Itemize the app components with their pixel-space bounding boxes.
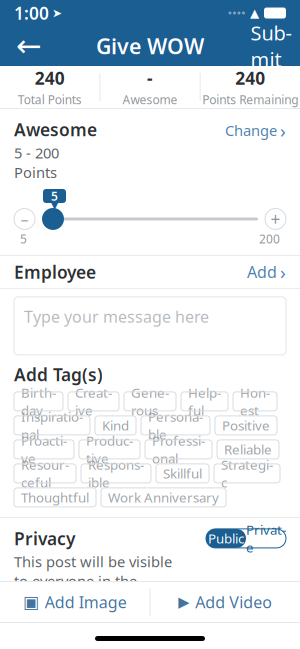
button[interactable]: Productive bbox=[79, 440, 140, 459]
staticText: – bbox=[20, 208, 28, 229]
staticText: ← bbox=[16, 29, 42, 63]
staticText: Positive bbox=[222, 417, 270, 434]
staticText: This post will be visible to everyone in… bbox=[14, 552, 172, 610]
button[interactable]: Creative bbox=[68, 392, 119, 411]
button[interactable]: Back bbox=[0, 26, 58, 66]
staticText: Work Anniversary bbox=[108, 489, 219, 506]
button[interactable]: Private bbox=[246, 529, 286, 548]
button[interactable]: Change bbox=[225, 118, 286, 143]
staticText: Honest bbox=[240, 384, 270, 419]
staticText: ▣ bbox=[23, 592, 39, 612]
staticText: › bbox=[280, 259, 286, 284]
staticText: Thoughtful bbox=[21, 489, 89, 506]
button[interactable]: ▣ bbox=[0, 582, 149, 622]
staticText: 240 bbox=[235, 66, 265, 89]
staticText: + bbox=[270, 207, 280, 230]
button[interactable]: Inspirational bbox=[14, 416, 90, 435]
staticText: 5 - 200 Points bbox=[14, 143, 59, 182]
staticText: 1:00 bbox=[14, 1, 49, 24]
staticText: Responsible bbox=[88, 456, 144, 491]
button[interactable]: Birthday bbox=[14, 392, 63, 411]
button[interactable]: Skillful bbox=[156, 464, 209, 483]
staticText: Inspirational bbox=[21, 408, 83, 443]
button[interactable]: Professional bbox=[145, 440, 212, 459]
button[interactable]: Responsible bbox=[81, 464, 151, 483]
button[interactable]: Thoughtful bbox=[14, 488, 96, 507]
staticText: Points Remaining bbox=[202, 91, 298, 107]
staticText: 5 bbox=[51, 188, 58, 204]
staticText: Professional bbox=[152, 432, 205, 467]
button[interactable]: Generous bbox=[124, 392, 176, 411]
staticText: Personable bbox=[148, 408, 203, 443]
staticText: Awesome bbox=[14, 118, 97, 141]
staticText: Strategic bbox=[221, 456, 273, 491]
staticText: Reliable bbox=[224, 441, 272, 458]
staticText: Proactive bbox=[21, 432, 67, 467]
staticText: Privacy bbox=[14, 527, 75, 550]
button[interactable]: Employee bbox=[0, 256, 300, 288]
button[interactable]: Strategic bbox=[214, 464, 280, 483]
staticText: Give WOW bbox=[96, 32, 204, 60]
button[interactable]: Decrease bbox=[14, 208, 35, 229]
button[interactable]: Reliable bbox=[217, 440, 279, 459]
button[interactable]: Public bbox=[206, 529, 246, 548]
button[interactable]: Kind bbox=[95, 416, 136, 435]
staticText: Add Tag(s) bbox=[14, 363, 103, 386]
button[interactable]: Resourceful bbox=[14, 464, 76, 483]
staticText: Helpful bbox=[188, 384, 221, 419]
button[interactable]: Helpful bbox=[181, 392, 228, 411]
staticText: › bbox=[280, 118, 286, 143]
staticText: Add bbox=[247, 261, 277, 282]
button[interactable]: Work Anniversary bbox=[101, 488, 226, 507]
staticText: Total Points bbox=[18, 91, 82, 107]
staticText: 240 bbox=[35, 66, 65, 89]
staticText: Birthday bbox=[21, 384, 56, 419]
staticText: ▶ bbox=[178, 594, 189, 610]
staticText: Add Image bbox=[45, 591, 127, 613]
staticText: 5 bbox=[20, 231, 27, 247]
staticText: Type your message here bbox=[24, 306, 209, 327]
staticText: Productive bbox=[86, 432, 133, 467]
staticText: Public bbox=[208, 530, 244, 547]
button[interactable]: Positive bbox=[215, 416, 277, 435]
staticText: Kind bbox=[102, 417, 129, 434]
button[interactable]: Type your message here bbox=[14, 297, 286, 355]
staticText: ▼ bbox=[51, 200, 58, 211]
staticText: Awesome bbox=[122, 91, 177, 107]
button[interactable]: Increase bbox=[265, 208, 286, 229]
staticText: Add Video bbox=[195, 591, 272, 613]
staticText: Resourceful bbox=[21, 456, 69, 491]
button[interactable]: Honest bbox=[233, 392, 277, 411]
staticText: 200 bbox=[259, 231, 280, 247]
staticText: - bbox=[147, 66, 153, 89]
button[interactable]: Proactive bbox=[14, 440, 74, 459]
staticText: Employee bbox=[14, 260, 96, 283]
staticText: Submit bbox=[250, 19, 291, 72]
button[interactable]: ▶ bbox=[150, 582, 300, 622]
staticText: ▲ bbox=[250, 6, 259, 20]
staticText: Change bbox=[225, 121, 277, 140]
button[interactable]: Personable bbox=[141, 416, 210, 435]
staticText: ➤ bbox=[52, 6, 62, 20]
staticText: Creative bbox=[75, 384, 112, 419]
staticText: Generous bbox=[131, 384, 169, 419]
button[interactable]: Submit bbox=[242, 26, 300, 66]
staticText: Private bbox=[246, 521, 286, 556]
staticText: Skillful bbox=[163, 465, 202, 482]
